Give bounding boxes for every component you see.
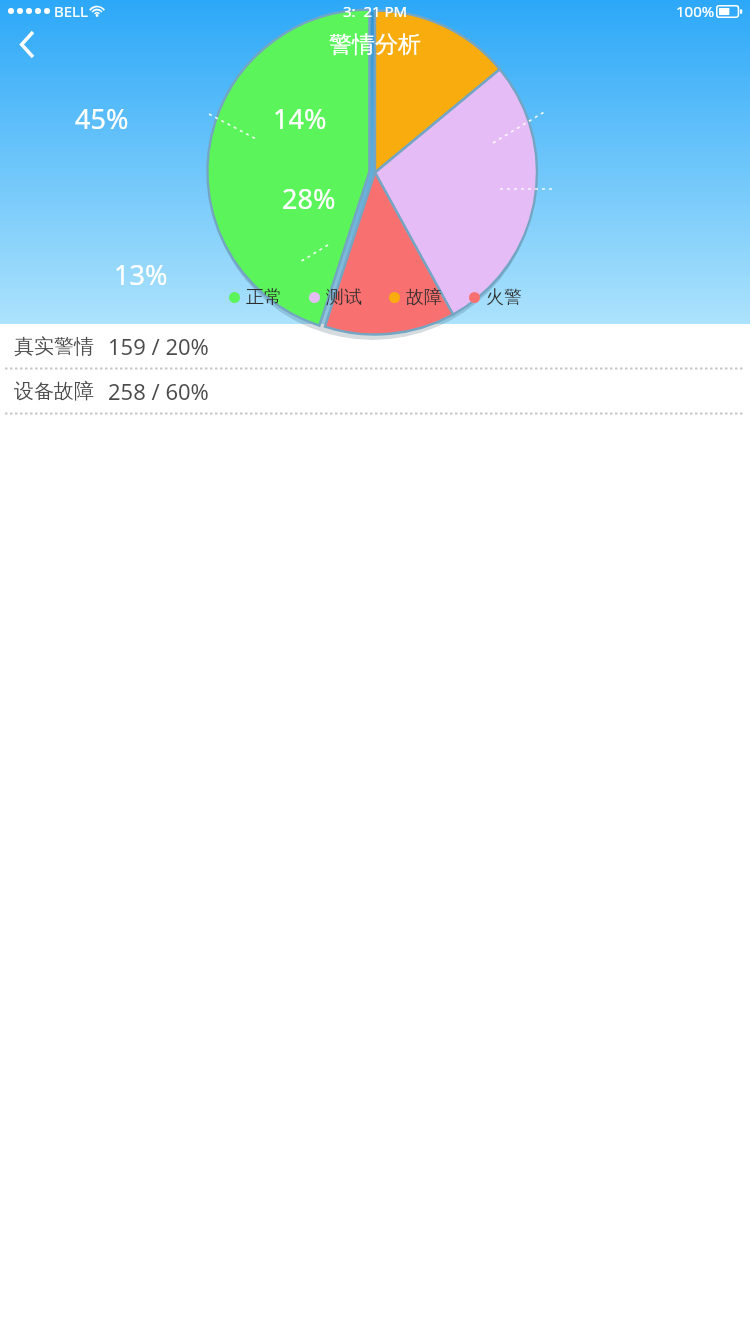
staticText: 真实警情	[14, 334, 94, 359]
staticText: 设备故障	[14, 379, 94, 404]
button[interactable]: 测试	[309, 283, 362, 312]
staticText: 100%	[676, 1, 715, 21]
staticText: 火警	[486, 286, 522, 309]
button[interactable]: 火警	[469, 283, 522, 312]
button[interactable]: 真实警情	[0, 324, 750, 368]
staticText: 故障	[406, 286, 442, 309]
button[interactable]: 故障	[389, 283, 442, 312]
button[interactable]: 设备故障	[0, 369, 750, 413]
staticText: BELL	[54, 1, 88, 21]
staticText: 警情分析	[329, 30, 421, 59]
staticText: 正常	[246, 286, 282, 309]
button[interactable]: Back	[3, 21, 49, 67]
staticText: 258 / 60%	[108, 376, 209, 406]
staticText: 14%	[273, 100, 327, 137]
staticText: 3: 21 PM	[343, 1, 408, 21]
staticText: 159 / 20%	[108, 331, 209, 361]
button[interactable]: 正常	[229, 283, 282, 312]
staticText: 45%	[75, 100, 129, 137]
staticText: 13%	[114, 256, 168, 293]
staticText: 28%	[282, 180, 336, 217]
staticText: 测试	[326, 286, 362, 309]
